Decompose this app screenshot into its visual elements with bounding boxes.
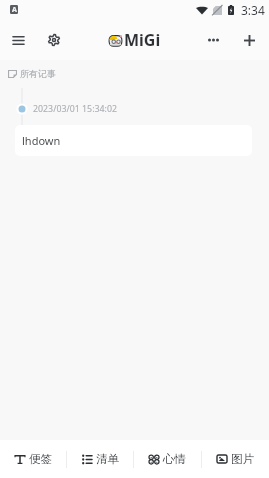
button[interactable]: Settings bbox=[36, 22, 72, 58]
staticText: 2023/03/01 15:34:02 bbox=[33, 103, 117, 115]
button[interactable]: More options bbox=[195, 22, 231, 58]
staticText: A bbox=[12, 5, 17, 14]
button[interactable]: 所有记事 bbox=[8, 68, 56, 79]
staticText: 心情 bbox=[163, 452, 186, 466]
button[interactable]: Menu bbox=[0, 22, 36, 58]
staticText: 清单 bbox=[96, 452, 119, 466]
button[interactable]: 心情 bbox=[134, 440, 201, 478]
staticText: 所有记事 bbox=[20, 68, 56, 79]
staticText: 图片 bbox=[231, 452, 254, 466]
staticText: 便签 bbox=[29, 452, 52, 466]
staticText: lhdown bbox=[22, 133, 61, 148]
staticText: MiGi bbox=[124, 29, 161, 51]
button[interactable]: 清单 bbox=[67, 440, 133, 478]
button[interactable]: 便签 bbox=[0, 440, 66, 478]
button[interactable]: lhdown bbox=[15, 125, 252, 156]
staticText: 3:34 bbox=[241, 2, 265, 18]
button[interactable]: 图片 bbox=[202, 440, 269, 478]
button[interactable]: Add bbox=[231, 22, 267, 58]
